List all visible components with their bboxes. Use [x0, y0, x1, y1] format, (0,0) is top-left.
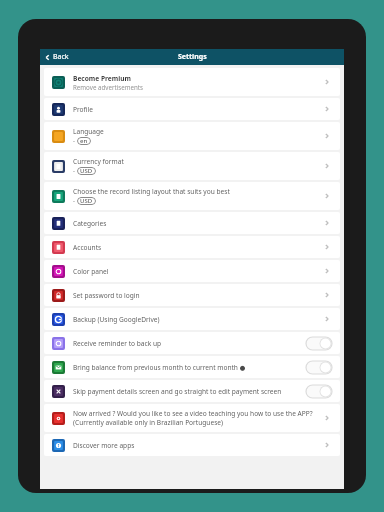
- staticText: Discover more apps: [73, 441, 135, 450]
- button[interactable]: Become Premium: [44, 68, 340, 96]
- staticText: Color panel: [73, 267, 109, 276]
- button[interactable]: Currency format: [44, 152, 340, 180]
- button[interactable]: Receive reminder to back up: [44, 332, 340, 354]
- staticText: (Currently available only in Brazilian P…: [73, 418, 223, 427]
- button[interactable]: Back: [40, 52, 73, 62]
- staticText: en: [80, 137, 88, 145]
- staticText: USD: [80, 167, 93, 175]
- staticText: Receive reminder to back up: [73, 339, 162, 348]
- staticText: -: [73, 197, 77, 205]
- staticText: Backup (Using GoogleDrive): [73, 315, 160, 324]
- staticText: Settings: [178, 52, 207, 62]
- staticText: Choose the record listing layout that su…: [73, 187, 230, 196]
- staticText: Back: [53, 52, 69, 62]
- staticText: Remove advertisements: [73, 83, 144, 91]
- button[interactable]: Skip payment details screen and go strai…: [44, 380, 340, 402]
- staticText: USD: [80, 197, 93, 205]
- staticText: Skip payment details screen and go strai…: [73, 387, 282, 396]
- button[interactable]: Bring balance from previous month to cur…: [44, 356, 340, 378]
- staticText: Become Premium: [73, 74, 131, 83]
- staticText: Accounts: [73, 243, 102, 252]
- staticText: Now arrived ? Would you like to see a vi…: [73, 409, 313, 418]
- staticText: -: [73, 167, 77, 175]
- staticText: Bring balance from previous month to cur…: [73, 363, 246, 372]
- button[interactable]: Backup (Using GoogleDrive): [44, 308, 340, 330]
- button[interactable]: Color panel: [44, 260, 340, 282]
- button[interactable]: Now arrived ? Would you like to see a vi…: [44, 404, 340, 432]
- staticText: Profile: [73, 105, 93, 114]
- button[interactable]: Profile: [44, 98, 340, 120]
- button[interactable]: Discover more apps: [44, 434, 340, 456]
- staticText: Currency format: [73, 157, 124, 166]
- staticText: Language: [73, 127, 104, 136]
- staticText: -: [73, 137, 77, 145]
- button[interactable]: Choose the record listing layout that su…: [44, 182, 340, 210]
- staticText: Set password to login: [73, 291, 140, 300]
- button[interactable]: Categories: [44, 212, 340, 234]
- staticText: Categories: [73, 219, 107, 228]
- button[interactable]: Accounts: [44, 236, 340, 258]
- button[interactable]: Set password to login: [44, 284, 340, 306]
- button[interactable]: Language: [44, 122, 340, 150]
